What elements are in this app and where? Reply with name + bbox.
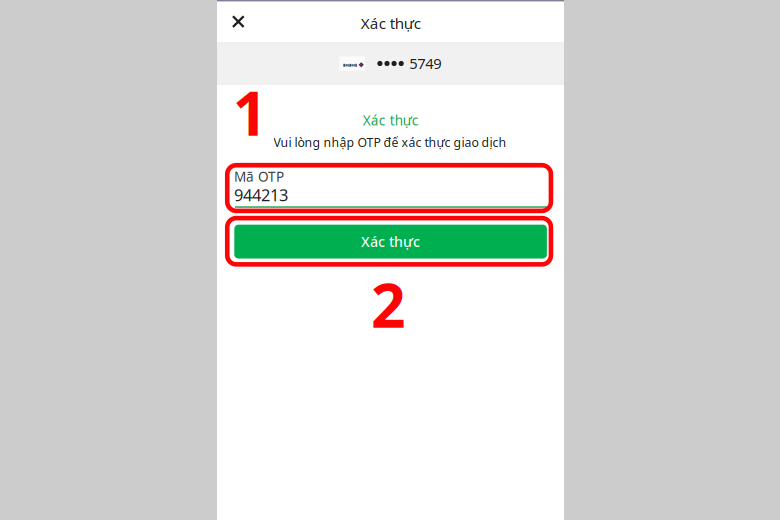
staticText: 944213: [234, 184, 288, 206]
button[interactable]: Close: [217, 1, 259, 43]
staticText: 5749: [409, 53, 441, 73]
button[interactable]: Mã OTP: [234, 167, 547, 208]
staticText: Xác thực: [361, 13, 421, 33]
staticText: 2: [371, 263, 406, 345]
staticText: Xác thực: [361, 232, 420, 251]
staticText: 1: [233, 71, 268, 153]
button[interactable]: Xác thực: [234, 225, 547, 258]
staticText: Mã OTP: [234, 167, 284, 186]
staticText: Xác thực: [363, 111, 419, 129]
staticText: Vui lòng nhập OTP để xác thực giao dịch: [273, 134, 506, 151]
